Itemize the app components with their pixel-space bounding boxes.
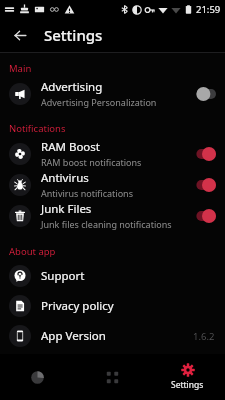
staticText: Antivirus: [41, 170, 89, 186]
button[interactable]: Settings: [150, 354, 225, 400]
button[interactable]: Back: [5, 20, 35, 50]
button[interactable]: Analytics: [0, 354, 75, 400]
staticText: About app: [9, 245, 56, 258]
staticText: Advertising Personalization: [41, 96, 157, 108]
staticText: Privacy policy: [41, 298, 215, 314]
staticText: Advertising: [41, 79, 103, 95]
button[interactable]: On: [187, 174, 217, 196]
staticText: Settings: [171, 379, 204, 391]
staticText: App Version: [41, 328, 193, 344]
button[interactable]: Advertising: [0, 78, 225, 109]
staticText: Antivirus notifications: [41, 187, 133, 199]
button[interactable]: On: [187, 143, 217, 165]
button[interactable]: App Version: [0, 321, 225, 351]
staticText: Junk files cleaning notifications: [41, 218, 172, 230]
staticText: Support: [41, 268, 215, 284]
button[interactable]: Support: [0, 261, 225, 291]
staticText: RAM boost notifications: [41, 156, 142, 168]
button[interactable]: On: [187, 205, 217, 227]
staticText: 1.6.2: [193, 330, 215, 343]
staticText: Junk Files: [41, 201, 92, 217]
button[interactable]: Tools: [75, 354, 150, 400]
button[interactable]: Privacy policy: [0, 291, 225, 321]
button[interactable]: Antivirus: [0, 169, 225, 200]
button[interactable]: Junk Files: [0, 200, 225, 231]
staticText: RAM Boost: [41, 139, 100, 155]
staticText: Notifications: [9, 122, 66, 135]
staticText: 21:59: [196, 3, 221, 16]
staticText: Main: [9, 62, 32, 75]
button[interactable]: RAM Boost: [0, 138, 225, 169]
button[interactable]: Off: [187, 83, 217, 105]
staticText: Settings: [44, 25, 103, 45]
